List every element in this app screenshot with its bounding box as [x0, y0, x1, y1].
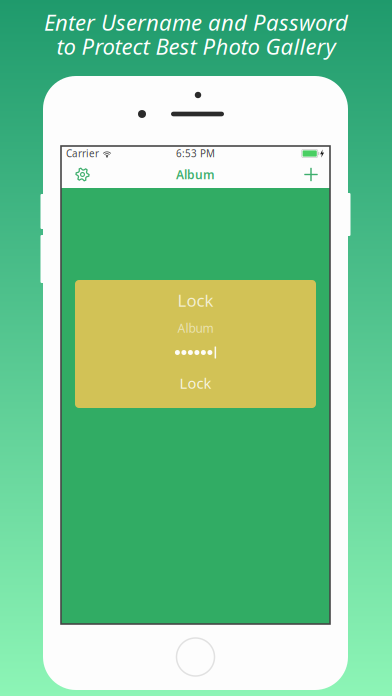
staticText: to Protect Best Photo Gallery	[56, 31, 335, 61]
staticText: Album	[176, 166, 215, 183]
staticText: Lock	[179, 373, 211, 393]
button[interactable]: Settings	[64, 161, 100, 188]
button[interactable]: Lock	[75, 367, 316, 399]
staticText: Carrier	[66, 147, 99, 160]
staticText: Album	[177, 320, 213, 336]
button[interactable]: Add album	[293, 161, 329, 188]
staticText: Lock	[177, 289, 213, 312]
staticText: 6:53 PM	[176, 147, 215, 160]
staticText: Enter Username and Password	[44, 7, 348, 37]
